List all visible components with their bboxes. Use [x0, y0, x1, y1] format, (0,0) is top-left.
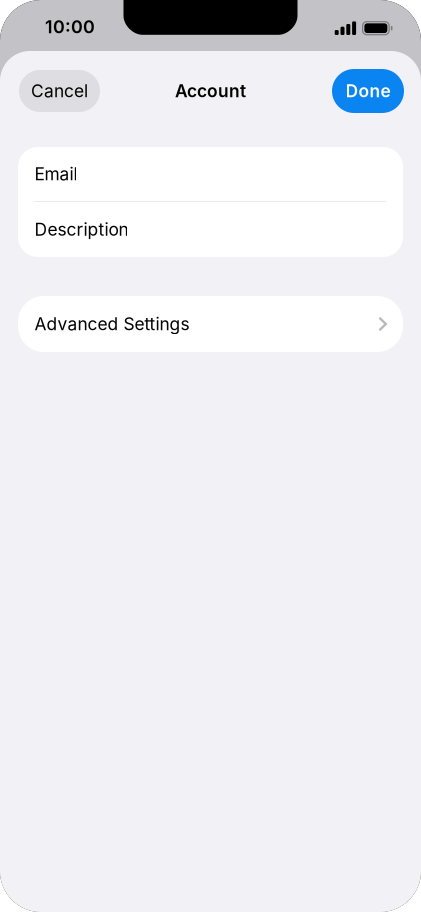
button[interactable]: Done	[332, 69, 404, 113]
button[interactable]: Email	[18, 147, 403, 201]
staticText: Email	[34, 163, 77, 184]
staticText: Description	[34, 219, 128, 240]
staticText: Account	[175, 80, 246, 101]
button[interactable]: Advanced Settings	[18, 296, 403, 352]
button[interactable]: Description	[18, 202, 403, 257]
staticText: Advanced Settings	[34, 313, 189, 334]
staticText: 10:00	[45, 16, 95, 37]
staticText: Cancel	[31, 80, 88, 101]
staticText: Done	[345, 80, 390, 101]
button[interactable]: Cancel	[19, 70, 100, 112]
